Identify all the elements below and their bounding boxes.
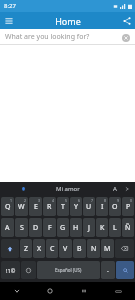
staticText: U [86, 202, 92, 212]
staticText: I [101, 202, 104, 212]
button[interactable]: A [113, 185, 117, 193]
button[interactable]: Voice input [18, 184, 28, 194]
staticText: 6 [78, 198, 81, 203]
button[interactable]: 0 [122, 197, 134, 216]
staticText: M [104, 244, 111, 254]
button[interactable]: Ñ [122, 218, 134, 237]
staticText: K [100, 223, 105, 233]
staticText: N [91, 244, 97, 254]
staticText: Z [24, 244, 29, 254]
button[interactable]: Español (US) [37, 261, 100, 279]
staticText: Ñ [125, 223, 131, 233]
staticText: D [33, 223, 39, 233]
staticText: P [126, 202, 131, 212]
staticText: G [60, 223, 66, 233]
button[interactable]: Hide keyboard [0, 282, 33, 300]
staticText: L [113, 223, 117, 233]
button[interactable]: More suggestions [122, 184, 132, 194]
staticText: 2 [24, 198, 27, 203]
staticText: O [112, 202, 118, 212]
button[interactable]: Shift [1, 239, 19, 258]
button[interactable]: Home [33, 282, 67, 300]
staticText: . [107, 265, 109, 275]
button[interactable]: D [29, 218, 42, 237]
staticText: S [20, 223, 24, 233]
button[interactable]: Share [120, 14, 133, 27]
button[interactable]: What are you looking for? [0, 29, 135, 45]
button[interactable]: Recent apps [67, 282, 101, 300]
staticText: !1© [6, 267, 16, 274]
button[interactable]: Symbols [1, 261, 20, 279]
button[interactable]: K [96, 218, 108, 237]
button[interactable]: 3 [29, 197, 42, 216]
button[interactable]: 5 [57, 197, 69, 216]
staticText: What are you looking for? [5, 32, 90, 42]
button[interactable]: X [33, 239, 45, 258]
staticText: 1 [10, 198, 13, 203]
button[interactable]: . [101, 261, 115, 279]
button[interactable]: Emoji [21, 261, 36, 279]
staticText: 7 [91, 198, 94, 203]
staticText: 9 [117, 198, 120, 203]
staticText: 8 [104, 198, 107, 203]
staticText: B [77, 244, 82, 254]
staticText: Y [74, 202, 78, 212]
staticText: Español (US) [55, 267, 82, 273]
button[interactable]: S [15, 218, 28, 237]
staticText: 4 [52, 198, 55, 203]
button[interactable]: Z [20, 239, 32, 258]
staticText: J [88, 223, 90, 233]
staticText: F [48, 223, 52, 233]
button[interactable]: 2 [15, 197, 28, 216]
button[interactable]: A [1, 218, 14, 237]
staticText: X [37, 244, 42, 254]
staticText: 0 [130, 198, 133, 203]
button[interactable]: V [59, 239, 72, 258]
staticText: A [5, 223, 10, 233]
button[interactable]: 8 [96, 197, 108, 216]
button[interactable]: H [70, 218, 82, 237]
button[interactable]: Backspace [115, 239, 134, 258]
staticText: 5 [65, 198, 68, 203]
button[interactable]: Clear search [120, 32, 131, 43]
button[interactable]: L [109, 218, 121, 237]
button[interactable]: Open navigation menu [2, 14, 15, 27]
button[interactable]: C [46, 239, 58, 258]
button[interactable]: 1 [1, 197, 14, 216]
button[interactable]: M [101, 239, 114, 258]
staticText: W [18, 202, 25, 212]
button[interactable]: B [73, 239, 86, 258]
button[interactable]: 6 [70, 197, 82, 216]
staticText: Home [55, 15, 81, 27]
button[interactable]: 9 [109, 197, 121, 216]
staticText: 3 [38, 198, 41, 203]
staticText: T [61, 202, 65, 212]
staticText: R [47, 202, 52, 212]
button[interactable]: Switch keyboard [101, 282, 135, 300]
button[interactable]: Search [116, 261, 134, 279]
button[interactable]: G [57, 218, 69, 237]
staticText: Q [5, 202, 11, 212]
staticText: 8:27 [4, 2, 16, 10]
button[interactable]: F [43, 218, 56, 237]
staticText: E [34, 202, 38, 212]
staticText: C [50, 244, 55, 254]
button[interactable]: 7 [83, 197, 95, 216]
button[interactable]: J [83, 218, 95, 237]
staticText: V [63, 244, 68, 254]
button[interactable]: 4 [43, 197, 56, 216]
button[interactable]: Mi amor [56, 185, 80, 193]
button[interactable]: N [87, 239, 100, 258]
staticText: H [73, 223, 79, 233]
